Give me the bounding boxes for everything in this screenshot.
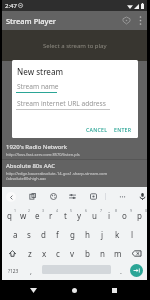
button[interactable]: x xyxy=(37,244,51,263)
button[interactable]: Back xyxy=(22,280,44,300)
staticText: CANCEL xyxy=(86,126,108,133)
staticText: c xyxy=(56,248,60,259)
button[interactable]: o xyxy=(117,206,132,225)
staticText: 9 xyxy=(130,208,133,213)
button[interactable]: Sleep timer xyxy=(119,11,133,30)
staticText: o xyxy=(122,210,127,221)
staticText: a xyxy=(13,229,18,240)
staticText: Stream name xyxy=(17,82,59,91)
staticText: z xyxy=(28,248,32,259)
button[interactable]: k xyxy=(110,225,125,244)
staticText: Select a stream to play xyxy=(43,42,107,50)
button[interactable]: Close toolbar xyxy=(6,192,16,202)
staticText: , xyxy=(30,267,32,277)
staticText: y xyxy=(77,210,82,221)
button[interactable]: n xyxy=(95,244,110,263)
staticText: n xyxy=(100,248,105,259)
staticText: Stream Player xyxy=(6,16,56,26)
staticText: s xyxy=(27,229,31,240)
button[interactable]: a xyxy=(8,225,22,244)
button[interactable]: s xyxy=(22,225,36,244)
button[interactable]: ?123 xyxy=(4,263,22,280)
staticText: b xyxy=(85,248,90,259)
button[interactable]: m xyxy=(110,244,125,263)
button[interactable]: p xyxy=(132,206,147,225)
staticText: 8 xyxy=(115,208,118,213)
staticText: p xyxy=(137,210,142,221)
staticText: 3 xyxy=(42,208,45,213)
button[interactable]: 1920's Radio Network xyxy=(2,141,147,159)
staticText: http://loss.fast-serv.com:8570/listen.pl… xyxy=(6,152,80,157)
button[interactable]: Home xyxy=(63,280,85,300)
staticText: New stream xyxy=(17,66,64,77)
staticText: h xyxy=(85,229,90,240)
button[interactable]: j xyxy=(95,225,110,244)
staticText: 7 xyxy=(100,208,103,213)
button[interactable]: q xyxy=(2,206,16,225)
staticText: u xyxy=(92,210,97,221)
button[interactable]: Stickers xyxy=(47,190,59,203)
button[interactable]: b xyxy=(80,244,95,263)
staticText: 5 xyxy=(70,208,73,213)
staticText: ENTER xyxy=(114,126,132,133)
button[interactable]: d xyxy=(36,225,50,244)
button[interactable]: l xyxy=(125,225,140,244)
button[interactable]: Recents xyxy=(103,280,125,300)
button[interactable]: h xyxy=(80,225,95,244)
button[interactable]: GIF xyxy=(87,190,99,203)
staticText: l xyxy=(131,229,134,240)
button[interactable]: Backspace xyxy=(125,244,147,263)
staticText: . xyxy=(120,267,122,277)
staticText: m xyxy=(114,248,122,259)
staticText: x xyxy=(42,248,47,259)
button[interactable]: i xyxy=(102,206,117,225)
staticText: 1920's Radio Network xyxy=(6,143,67,151)
staticText: q xyxy=(7,210,12,221)
staticText: 6 xyxy=(85,208,88,213)
button[interactable]: Voice input xyxy=(136,190,148,203)
staticText: f xyxy=(56,229,59,240)
button[interactable]: t xyxy=(58,206,72,225)
staticText: Absolute 80s AAC xyxy=(6,162,56,170)
button[interactable]: u xyxy=(87,206,102,225)
button[interactable]: CANCEL xyxy=(84,124,110,135)
button[interactable]: Absolute 80s AAC xyxy=(2,160,147,183)
button[interactable]: . xyxy=(115,263,127,280)
staticText: j xyxy=(101,229,104,240)
button[interactable]: f xyxy=(50,225,65,244)
staticText: v xyxy=(70,248,75,259)
button[interactable]: g xyxy=(65,225,80,244)
button[interactable]: Shift xyxy=(2,244,23,263)
button[interactable]: Clipboard xyxy=(26,190,38,203)
staticText: g xyxy=(70,229,75,240)
staticText: e xyxy=(35,210,40,221)
button[interactable]: z xyxy=(23,244,37,263)
staticText: http://edge.bauerabsolute-14-gos1.sharp-… xyxy=(6,171,108,181)
staticText: 1 xyxy=(14,208,17,213)
button[interactable]: c xyxy=(51,244,65,263)
staticText: Stream internet URL address xyxy=(17,99,106,108)
staticText: t xyxy=(64,210,67,221)
button[interactable]: More options xyxy=(133,11,147,30)
button[interactable]: e xyxy=(30,206,44,225)
button[interactable]: w xyxy=(16,206,30,225)
staticText: 0 xyxy=(145,208,148,213)
staticText: d xyxy=(41,229,46,240)
button[interactable]: y xyxy=(72,206,87,225)
staticText: ?123 xyxy=(8,268,19,275)
staticText: r xyxy=(49,210,53,221)
button[interactable]: r xyxy=(44,206,58,225)
button[interactable]: , xyxy=(25,263,37,280)
staticText: 2 xyxy=(28,208,31,213)
staticText: k xyxy=(115,229,120,240)
button[interactable]: v xyxy=(65,244,80,263)
staticText: w xyxy=(20,210,27,221)
button[interactable]: Enter xyxy=(130,264,143,277)
button[interactable]: Settings xyxy=(66,190,78,203)
staticText: 4 xyxy=(56,208,59,213)
staticText: i xyxy=(108,210,111,221)
staticText: 2:47 xyxy=(5,2,17,10)
button[interactable]: ENTER xyxy=(112,124,134,135)
button[interactable]: More xyxy=(116,190,128,203)
